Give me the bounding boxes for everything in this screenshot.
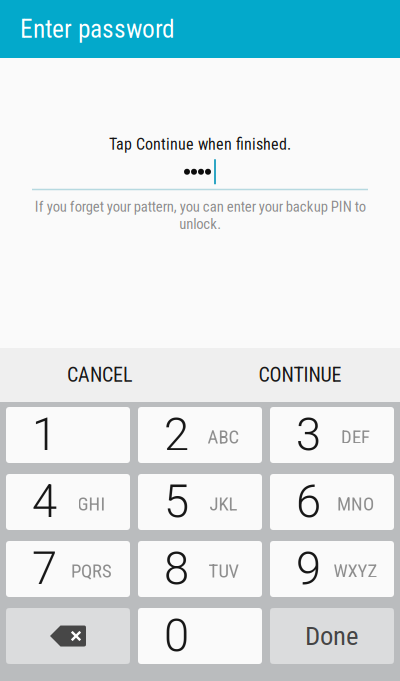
staticText: 2	[164, 408, 189, 461]
button[interactable]: CONTINUE	[200, 348, 400, 402]
button[interactable]: 5	[138, 474, 262, 530]
staticText: ABC	[207, 426, 239, 448]
button[interactable]: 7	[6, 541, 130, 597]
staticText: 4	[32, 475, 57, 528]
staticText: 7	[32, 542, 57, 595]
staticText: 6	[296, 475, 321, 528]
staticText: JKL	[209, 493, 237, 515]
button[interactable]: Delete	[6, 608, 130, 664]
staticText: 0	[164, 609, 189, 662]
button[interactable]: 9	[270, 541, 394, 597]
staticText: PQRS	[71, 560, 112, 582]
button[interactable]: 1	[6, 407, 130, 463]
button[interactable]: 6	[270, 474, 394, 530]
button[interactable]: 3	[270, 407, 394, 463]
staticText: Done	[305, 620, 359, 652]
staticText: WXYZ	[333, 560, 377, 582]
staticText: 3	[296, 408, 321, 461]
staticText: If you forget your pattern, you can ente…	[34, 198, 365, 233]
staticText: 8	[164, 542, 189, 595]
staticText: MNO	[337, 493, 374, 515]
staticText: TUV	[208, 560, 238, 582]
staticText: 9	[296, 542, 321, 595]
button[interactable]: 4	[6, 474, 130, 530]
button[interactable]: 2	[138, 407, 262, 463]
staticText: Tap Continue when finished.	[109, 135, 291, 154]
staticText: CANCEL	[67, 363, 133, 387]
staticText: DEF	[341, 426, 370, 448]
button[interactable]: 0	[138, 608, 262, 664]
button[interactable]: Done	[270, 608, 394, 664]
staticText: GHI	[77, 493, 105, 515]
button[interactable]: 8	[138, 541, 262, 597]
staticText: Enter password	[20, 14, 175, 44]
staticText: 1	[32, 408, 57, 461]
button[interactable]: CANCEL	[0, 348, 200, 402]
staticText: CONTINUE	[258, 363, 341, 387]
staticText: 5	[164, 475, 189, 528]
